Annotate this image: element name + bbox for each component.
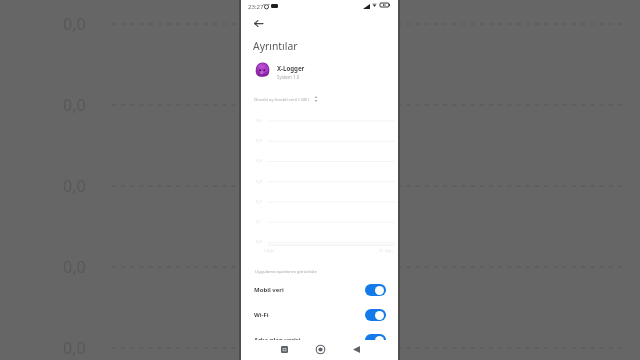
button[interactable]: Home [311,340,329,358]
staticText: 0,3 [256,179,262,185]
staticText: 0,0 [63,175,86,197]
staticText: 1 Ağu [263,248,275,254]
staticText: Arka plan verisi [254,336,301,344]
button[interactable]: Arka plan verisi [241,328,398,352]
staticText: Ayrıntılar [253,39,298,53]
staticText: 0,0 [63,13,86,35]
staticText: System 1.0 [277,74,300,80]
button[interactable]: Mobil veri [241,278,398,302]
button[interactable]: X-Logger [250,59,370,81]
staticText: 0,1 [256,219,262,225]
staticText: 0,0 [256,239,262,245]
staticText: Önceki ay (mobil veri) ( GB ) [254,96,310,102]
staticText: Mobil veri [254,286,284,294]
staticText: 0,5 [256,138,262,144]
staticText: 0,4 [256,158,262,164]
button[interactable]: Uygulama ayarlarını görüntüle [255,268,317,274]
staticText: 0,0 [63,337,86,359]
button[interactable]: Back [347,340,365,358]
staticText: 23:27 [248,3,264,11]
button[interactable]: Recent apps [275,340,293,358]
button[interactable]: Önceki ay (mobil veri) ( GB ) [254,96,318,102]
staticText: 0,2 [256,199,262,205]
staticText: 0,0 [63,94,86,116]
staticText: Wi-Fi [254,311,269,319]
staticText: 31 Ağu [379,248,393,254]
staticText: X-Logger [277,64,305,72]
staticText: 0,0 [63,256,86,278]
button[interactable]: Wi-Fi [241,303,398,327]
staticText: 0,6 [256,118,262,124]
button[interactable]: Back [250,15,267,32]
